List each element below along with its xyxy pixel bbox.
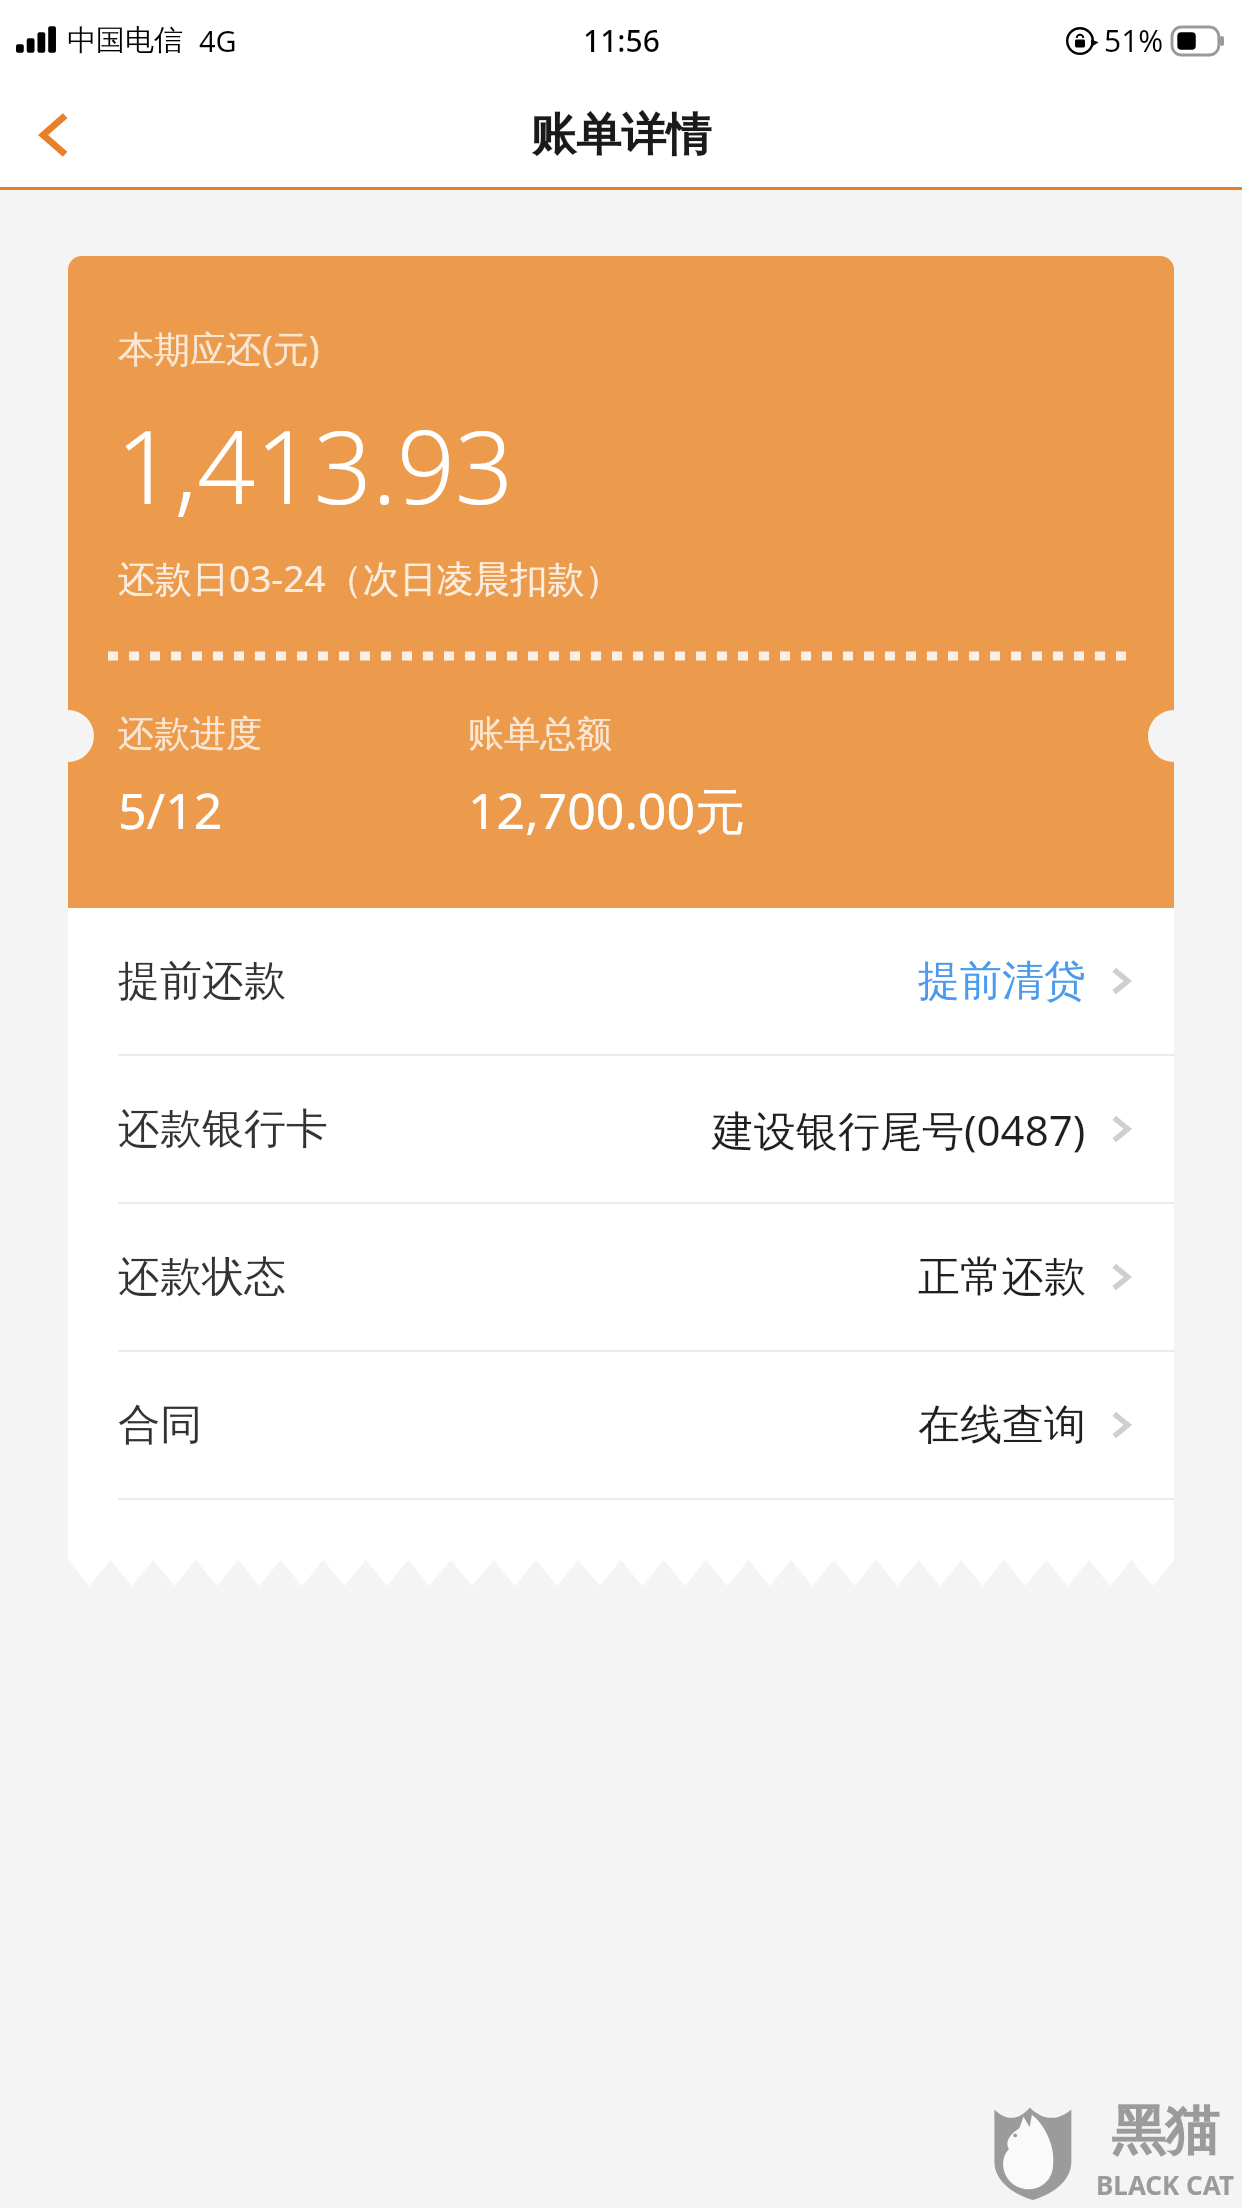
staticText: 11:56 bbox=[583, 20, 660, 61]
staticText: 在线查询 bbox=[918, 1399, 1086, 1452]
staticText: 提前清贷 bbox=[918, 955, 1086, 1008]
staticText: 1,413.93 bbox=[116, 395, 514, 534]
staticText: 建设银行尾号(0487) bbox=[712, 1101, 1086, 1158]
staticText: 还款状态 bbox=[118, 1251, 286, 1304]
staticText: 还款进度 bbox=[118, 711, 262, 756]
staticText: 本期应还(元) bbox=[118, 324, 320, 373]
staticText: 5/12 bbox=[118, 776, 223, 844]
staticText: BLACK CAT bbox=[1096, 2167, 1234, 2202]
button[interactable]: 合同 bbox=[68, 1352, 1174, 1498]
staticText: 51% bbox=[1104, 20, 1164, 61]
button[interactable]: 还款状态 bbox=[68, 1204, 1174, 1350]
staticText: 提前还款 bbox=[118, 955, 286, 1008]
staticText: 12,700.00元 bbox=[468, 776, 745, 844]
button[interactable]: 提前还款 bbox=[68, 908, 1174, 1054]
staticText: 账单总额 bbox=[468, 711, 612, 756]
staticText: 合同 bbox=[118, 1399, 202, 1452]
button[interactable]: 还款银行卡 bbox=[68, 1056, 1174, 1202]
staticText: 黑猫 bbox=[1111, 2097, 1219, 2165]
button[interactable]: Back bbox=[0, 80, 110, 190]
staticText: 中国电信 bbox=[67, 22, 183, 59]
staticText: 还款银行卡 bbox=[118, 1103, 328, 1156]
staticText: 还款日03-24（次日凌晨扣款） bbox=[118, 552, 622, 603]
staticText: 正常还款 bbox=[918, 1251, 1086, 1304]
staticText: 4G bbox=[199, 21, 237, 60]
staticText: 账单详情 bbox=[531, 107, 711, 164]
